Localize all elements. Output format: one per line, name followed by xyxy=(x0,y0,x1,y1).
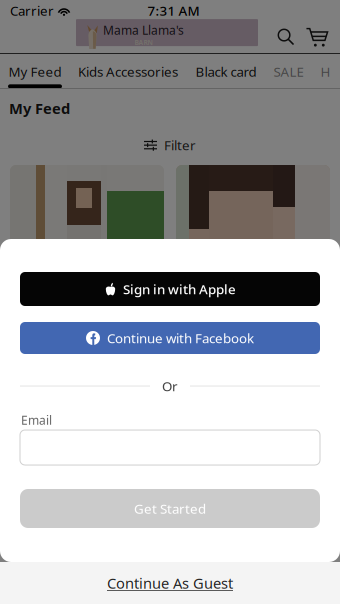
staticText: SALE xyxy=(273,63,303,80)
staticText: Carrier xyxy=(10,2,54,19)
button[interactable]: Kids Accessories xyxy=(78,54,178,88)
button[interactable]: H xyxy=(319,54,332,88)
staticText: My Feed xyxy=(9,98,70,118)
button[interactable]: Cart xyxy=(303,23,331,50)
button[interactable]: My Feed xyxy=(8,54,62,88)
staticText: Sign in with Apple xyxy=(123,280,236,298)
button[interactable]: SALE xyxy=(273,54,304,88)
button[interactable]: Get Started xyxy=(0,489,340,528)
button[interactable]: Black card xyxy=(194,54,258,88)
button[interactable]: Continue As Guest xyxy=(0,562,340,604)
staticText: Filter xyxy=(164,136,196,154)
button[interactable]: Filter xyxy=(0,118,340,154)
staticText: Kids Accessories xyxy=(78,63,178,80)
button[interactable]: Continue with Facebook xyxy=(0,322,340,354)
staticText: Or xyxy=(162,377,178,395)
staticText: Get Started xyxy=(134,500,206,517)
staticText: Black card xyxy=(195,63,256,80)
button[interactable]: Sign in with Apple xyxy=(0,272,340,306)
staticText: Continue with Facebook xyxy=(107,329,254,347)
staticText: Mama Llama's xyxy=(103,22,184,38)
staticText: H xyxy=(320,63,330,80)
button[interactable]: Search xyxy=(275,26,297,48)
staticText: Email xyxy=(21,412,52,428)
staticText: Continue As Guest xyxy=(107,573,233,593)
staticText: 7:31 AM xyxy=(147,2,199,19)
staticText: BARN xyxy=(134,38,152,47)
staticText: My Feed xyxy=(8,63,61,80)
